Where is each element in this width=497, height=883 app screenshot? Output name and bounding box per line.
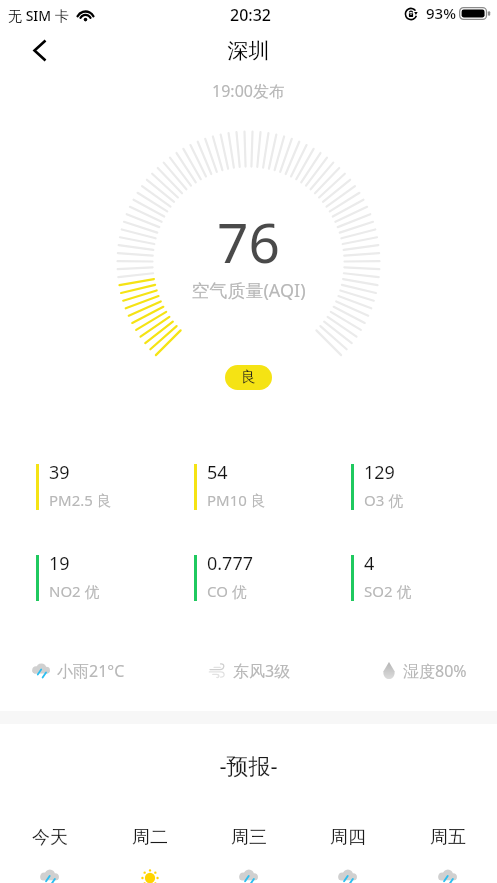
button[interactable]: 0.777	[194, 555, 344, 602]
button[interactable]: 周五	[405, 826, 490, 883]
staticText: 湿度80%	[403, 660, 467, 682]
staticText: 深圳	[0, 38, 497, 64]
button[interactable]: 周四	[305, 826, 390, 883]
staticText: 19:00发布	[0, 80, 497, 102]
button[interactable]: 小雨21°C	[30, 655, 150, 683]
button[interactable]: 湿度80%	[380, 655, 480, 683]
staticText: 周五	[430, 826, 466, 849]
staticText: 0.777	[207, 551, 254, 576]
button[interactable]: 周二	[107, 826, 192, 883]
staticText: 东风3级	[233, 660, 291, 682]
staticText: SO2 优	[364, 581, 412, 601]
staticText: 周三	[231, 826, 267, 849]
button[interactable]: 39	[36, 464, 186, 511]
staticText: 无 SIM 卡	[8, 6, 69, 25]
staticText: 93%	[426, 3, 456, 23]
staticText: 周四	[330, 826, 366, 849]
staticText: 129	[364, 460, 395, 485]
staticText: NO2 优	[49, 581, 100, 601]
staticText: 小雨21°C	[57, 660, 125, 682]
button[interactable]: 今天	[7, 826, 92, 883]
button[interactable]: 19	[36, 555, 186, 602]
staticText: 周二	[132, 826, 168, 849]
button[interactable]: 54	[194, 464, 344, 511]
staticText: 54	[207, 460, 228, 485]
staticText: 4	[364, 551, 375, 576]
staticText: 今天	[32, 826, 68, 849]
button[interactable]: Back	[18, 28, 62, 72]
staticText: 19	[49, 551, 70, 576]
staticText: PM10 良	[207, 490, 266, 510]
staticText: -预报-	[0, 750, 497, 780]
button[interactable]: 129	[351, 464, 497, 511]
staticText: 76	[0, 204, 497, 279]
staticText: PM2.5 良	[49, 490, 112, 510]
staticText: O3 优	[364, 490, 404, 510]
staticText: 空气质量(AQI)	[0, 278, 497, 303]
staticText: 39	[49, 460, 70, 485]
button[interactable]: 东风3级	[205, 655, 315, 683]
button[interactable]: 周三	[206, 826, 291, 883]
staticText: CO 优	[207, 581, 247, 601]
button[interactable]: 良	[225, 365, 272, 390]
staticText: 良	[241, 368, 256, 387]
staticText: 20:32	[230, 4, 271, 26]
button[interactable]: 4	[351, 555, 497, 602]
